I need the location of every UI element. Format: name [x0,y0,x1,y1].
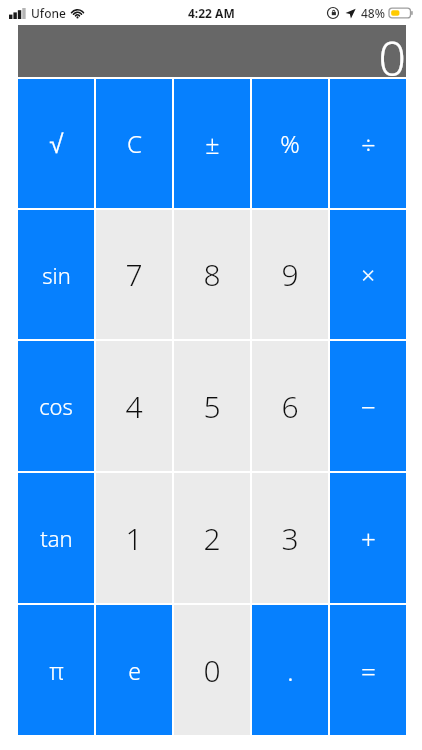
other: Location [345,8,356,19]
staticText: π [49,655,64,686]
staticText: . [287,653,294,688]
button[interactable]: 4 [96,341,172,471]
staticText: 4:22 AM [188,5,235,21]
button[interactable]: e [96,605,172,735]
button[interactable]: 8 [174,210,250,339]
button[interactable]: 9 [252,210,328,339]
staticText: Ufone [31,5,66,21]
staticText: e [128,655,141,686]
button[interactable]: cos [18,341,94,471]
button[interactable]: − [330,341,406,471]
button[interactable]: × [330,210,406,339]
staticText: 8 [203,254,221,295]
staticText: 6 [281,386,299,427]
staticText: 48% [361,5,385,21]
button[interactable]: tan [18,473,94,603]
staticText: 0 [203,650,221,691]
staticText: % [280,127,300,160]
staticText: 4 [125,386,143,427]
staticText: C [127,127,142,160]
button[interactable]: 2 [174,473,250,603]
button[interactable]: + [330,473,406,603]
button[interactable]: % [252,79,328,208]
staticText: × [361,258,375,291]
staticText: = [361,653,376,688]
staticText: 3 [281,518,299,559]
staticText: cos [39,391,73,421]
button[interactable]: π [18,605,94,735]
button[interactable]: 1 [96,473,172,603]
button[interactable]: 5 [174,341,250,471]
staticText: ± [205,127,220,161]
button[interactable]: 0 [174,605,250,735]
staticText: √ [49,129,64,158]
staticText: 2 [203,518,221,559]
other: Rotation lock [327,7,339,19]
button[interactable]: 7 [96,210,172,339]
staticText: 5 [203,386,221,427]
button[interactable]: . [252,605,328,735]
button[interactable]: 6 [252,341,328,471]
staticText: sin [42,260,71,290]
staticText: + [361,521,376,556]
staticText: 0 [378,25,406,77]
button[interactable]: sin [18,210,94,339]
button[interactable]: = [330,605,406,735]
button[interactable]: 3 [252,473,328,603]
staticText: ÷ [361,127,376,161]
button[interactable]: √ [18,79,94,208]
staticText: − [361,389,376,424]
button[interactable]: ÷ [330,79,406,208]
staticText: 7 [125,254,143,295]
button[interactable]: C [96,79,172,208]
staticText: 1 [125,518,143,559]
staticText: tan [40,523,73,553]
button[interactable]: ± [174,79,250,208]
staticText: 9 [281,254,299,295]
